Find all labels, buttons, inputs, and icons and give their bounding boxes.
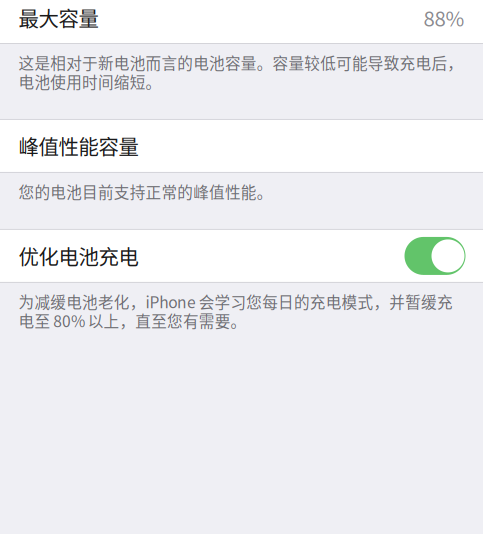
staticText: 为减缓电池老化，iPhone 会学习您每日的充电模式，并暂缓充电至 80% 以上… bbox=[18, 292, 453, 330]
button[interactable]: 优化电池充电 bbox=[0, 230, 483, 283]
staticText: 这是相对于新电池而言的电池容量。容量较低可能导致充电后，电池使用时间缩短。 bbox=[18, 53, 463, 91]
staticText: 最大容量 bbox=[18, 3, 98, 32]
staticText: 峰值性能容量 bbox=[18, 131, 138, 161]
staticText: 优化电池充电 bbox=[18, 241, 138, 271]
staticText: 88% bbox=[423, 3, 464, 32]
staticText: 您的电池目前支持正常的峰值性能。 bbox=[18, 182, 273, 201]
